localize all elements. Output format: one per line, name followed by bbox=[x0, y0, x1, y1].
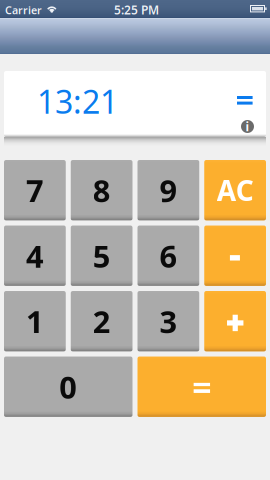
staticText: 1 bbox=[26, 301, 44, 342]
staticText: 8 bbox=[93, 170, 111, 211]
button[interactable] bbox=[137, 356, 266, 417]
button[interactable]: 8 bbox=[71, 160, 133, 220]
staticText: 9 bbox=[159, 170, 177, 211]
button[interactable]: 0 bbox=[4, 356, 132, 417]
staticText: 3 bbox=[159, 301, 177, 342]
staticText: 13:21 bbox=[37, 80, 118, 122]
button[interactable]: 7 bbox=[4, 160, 66, 220]
button[interactable]: Info bbox=[241, 120, 254, 133]
staticText: Carrier bbox=[5, 3, 42, 17]
button[interactable]: 3 bbox=[137, 291, 199, 351]
staticText: 2 bbox=[93, 301, 111, 342]
button[interactable]: 9 bbox=[137, 160, 199, 220]
staticText: 7 bbox=[26, 170, 44, 211]
button[interactable]: 2 bbox=[71, 291, 133, 351]
button[interactable]: 6 bbox=[137, 225, 199, 286]
staticText: 4 bbox=[26, 235, 44, 276]
button[interactable] bbox=[204, 225, 266, 286]
staticText: 5:25 PM bbox=[114, 2, 159, 18]
button[interactable]: 5 bbox=[71, 225, 133, 286]
staticText: AC bbox=[217, 172, 254, 209]
button[interactable]: 1 bbox=[4, 291, 66, 351]
button[interactable] bbox=[204, 291, 266, 351]
button[interactable]: 4 bbox=[4, 225, 66, 286]
staticText: 0 bbox=[59, 366, 77, 407]
staticText: 6 bbox=[159, 235, 177, 276]
staticText: 5 bbox=[93, 235, 111, 276]
staticText: i bbox=[245, 118, 249, 134]
button[interactable]: AC bbox=[204, 160, 266, 220]
